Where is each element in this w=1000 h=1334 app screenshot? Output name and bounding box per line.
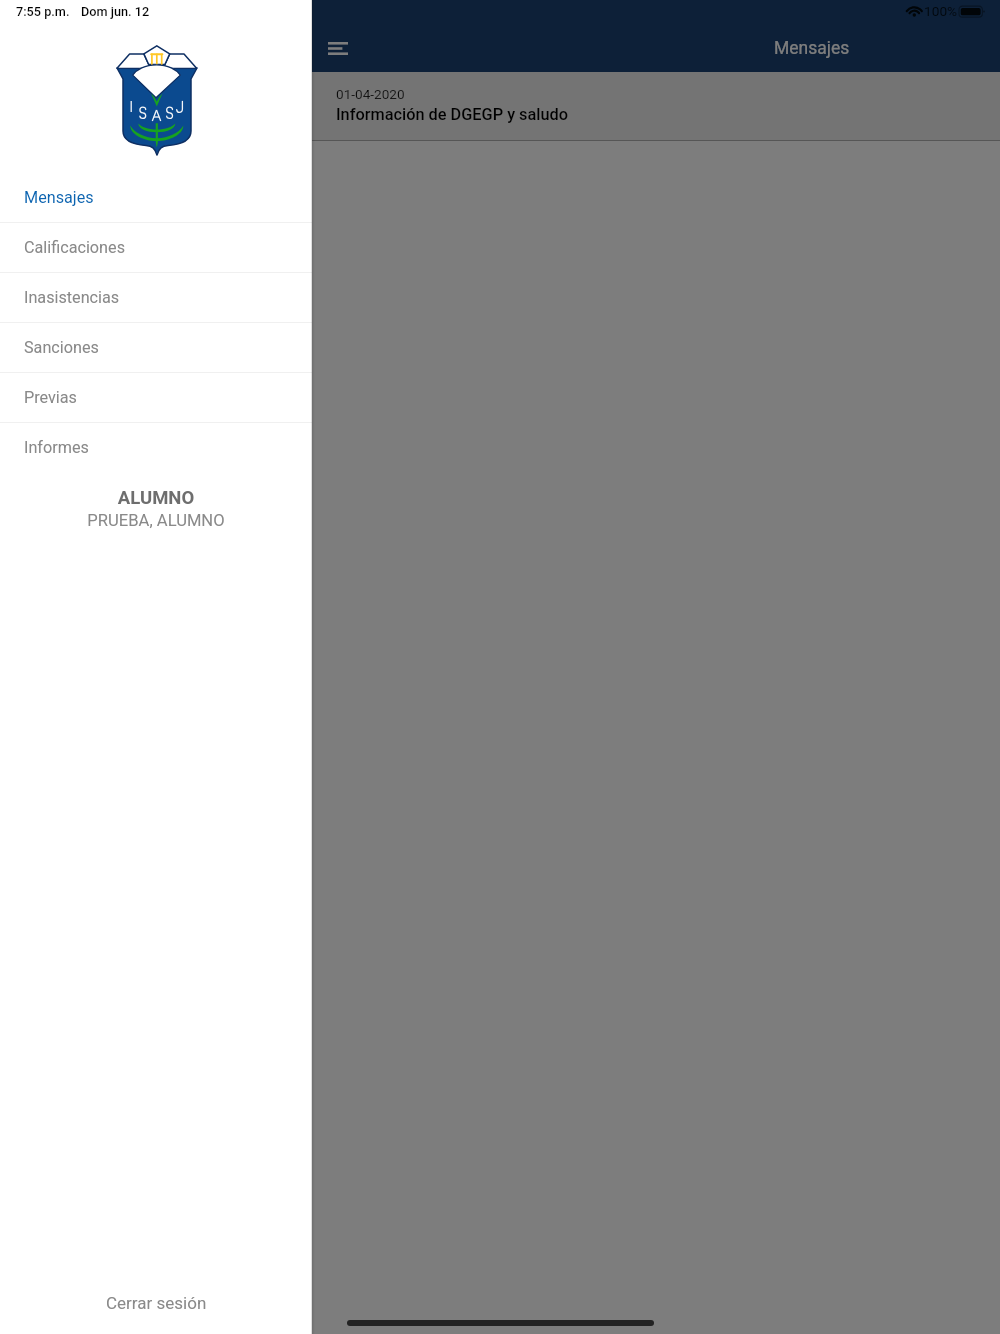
button[interactable]: Previas bbox=[0, 373, 312, 423]
staticText: Mensajes bbox=[24, 188, 94, 207]
staticText: 01-04-2020 bbox=[336, 86, 405, 102]
staticText: 7:55 p.m. bbox=[16, 4, 70, 19]
staticText: ALUMNO bbox=[0, 487, 312, 509]
button[interactable]: 01-04-2020 bbox=[312, 72, 1000, 141]
staticText: PRUEBA, ALUMNO bbox=[0, 511, 312, 530]
button[interactable]: Informes bbox=[0, 423, 312, 472]
staticText: Informes bbox=[24, 438, 89, 457]
staticText: Información de DGEGP y saludo bbox=[336, 105, 569, 124]
staticText: Previas bbox=[24, 388, 77, 407]
button[interactable]: Close navigation drawer bbox=[312, 0, 1000, 1334]
button[interactable]: Cerrar sesión bbox=[0, 1272, 312, 1334]
staticText: Mensajes bbox=[774, 38, 850, 59]
button[interactable]: Inasistencias bbox=[0, 273, 312, 323]
button[interactable]: Calificaciones bbox=[0, 223, 312, 273]
staticText: Sanciones bbox=[24, 338, 99, 357]
staticText: Calificaciones bbox=[24, 238, 125, 257]
staticText: Dom jun. 12 bbox=[81, 4, 150, 19]
button[interactable]: Mensajes bbox=[0, 173, 312, 223]
staticText: 100% bbox=[924, 3, 958, 19]
other: Wi-Fi and battery status bbox=[0, 0, 1000, 1334]
button[interactable]: Sanciones bbox=[0, 323, 312, 373]
staticText: Inasistencias bbox=[24, 288, 120, 307]
button[interactable]: Open navigation menu bbox=[316, 26, 360, 70]
staticText: Cerrar sesión bbox=[106, 1293, 207, 1313]
